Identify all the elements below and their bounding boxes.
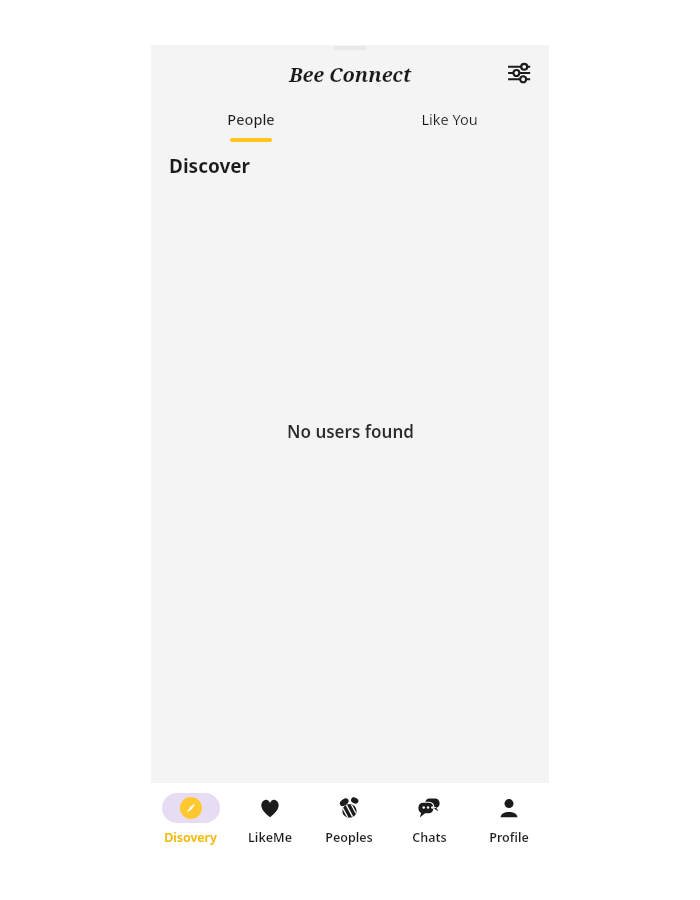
staticText: Chats — [412, 829, 447, 846]
button[interactable]: Filters — [499, 53, 539, 93]
staticText: Bee Connect — [289, 61, 412, 88]
button[interactable]: Chats — [389, 783, 469, 857]
staticText: Disovery — [164, 829, 217, 846]
staticText: No users found — [287, 420, 414, 443]
staticText: Profile — [489, 829, 529, 846]
staticText: Discover — [169, 153, 251, 179]
button[interactable]: LikeMe — [230, 783, 309, 857]
button[interactable]: Disovery — [151, 783, 230, 857]
staticText: LikeMe — [248, 829, 292, 846]
button[interactable]: Profile — [469, 783, 549, 857]
button[interactable]: People — [151, 97, 350, 145]
staticText: Peoples — [325, 829, 373, 846]
staticText: Like You — [421, 109, 478, 129]
button[interactable]: Like You — [350, 97, 549, 145]
button[interactable]: Peoples — [309, 783, 389, 857]
staticText: People — [227, 109, 275, 129]
